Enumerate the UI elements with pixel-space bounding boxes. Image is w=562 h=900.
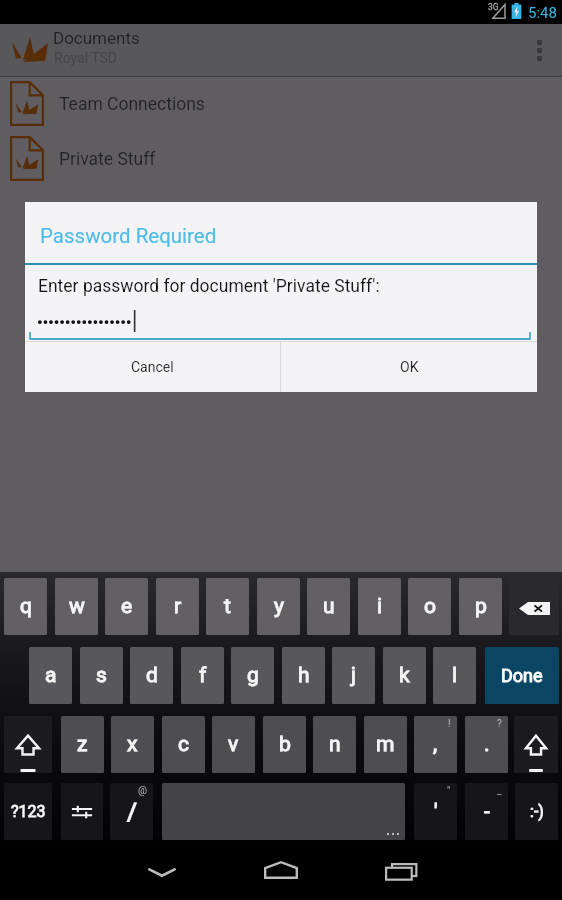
button[interactable]: u	[307, 578, 350, 635]
staticText: x	[127, 732, 138, 757]
button[interactable]: o	[408, 578, 451, 635]
staticText: Password Required	[40, 224, 217, 248]
button[interactable]: ?	[465, 716, 508, 773]
button[interactable]: Shift	[514, 716, 558, 773]
staticText: p	[475, 594, 487, 619]
staticText: j	[351, 663, 357, 688]
staticText: t	[224, 594, 231, 619]
staticText: e	[121, 594, 133, 619]
staticText: h	[298, 663, 310, 688]
button[interactable]: q	[4, 578, 47, 635]
button[interactable]: Space	[162, 783, 405, 840]
staticText: i	[377, 594, 383, 619]
staticText: .	[484, 732, 490, 757]
staticText: y	[274, 594, 284, 619]
button[interactable]: :-)	[515, 783, 558, 840]
staticText: -	[484, 799, 490, 824]
button[interactable]: Private Stuff	[0, 132, 562, 187]
staticText: g	[247, 663, 259, 688]
button[interactable]: j	[332, 647, 375, 704]
button[interactable]: Recent apps	[371, 849, 431, 893]
staticText: o	[424, 594, 436, 619]
button[interactable]: Backspace	[509, 578, 559, 635]
button[interactable]: k	[383, 647, 426, 704]
staticText: 5:48	[528, 4, 557, 22]
button[interactable]: Home	[251, 848, 311, 892]
button[interactable]: z	[61, 716, 104, 773]
button[interactable]: g	[231, 647, 274, 704]
staticText: "	[447, 785, 451, 797]
button[interactable]: x	[111, 716, 154, 773]
staticText: b	[279, 732, 291, 757]
staticText: Team Connections	[59, 94, 205, 115]
staticText: q	[20, 594, 32, 619]
staticText: Cancel	[131, 359, 174, 375]
button[interactable]: p	[459, 578, 502, 635]
button[interactable]: More options	[516, 24, 562, 77]
staticText: k	[399, 663, 410, 688]
staticText: !	[448, 718, 451, 730]
button[interactable]: v	[212, 716, 255, 773]
button[interactable]: OK	[281, 342, 537, 392]
button[interactable]: Keyboard settings	[61, 783, 103, 840]
staticText: Royal TSD	[54, 50, 117, 66]
button[interactable]: Team Connections	[0, 77, 562, 132]
staticText: m	[376, 732, 395, 757]
button[interactable]: m	[364, 716, 407, 773]
button[interactable]: Cancel	[25, 342, 280, 392]
button[interactable]: h	[282, 647, 325, 704]
button[interactable]: e	[105, 578, 148, 635]
staticText: a	[45, 663, 57, 688]
staticText: ,	[433, 732, 438, 757]
staticText: Documents	[53, 28, 140, 48]
staticText: OK	[400, 359, 419, 375]
staticText: ?	[497, 718, 502, 730]
staticText: d	[146, 663, 158, 688]
staticText: /	[127, 798, 137, 826]
button[interactable]: t	[206, 578, 249, 635]
staticText: v	[228, 732, 239, 757]
button[interactable]: n	[313, 716, 356, 773]
staticText: l	[452, 663, 458, 688]
staticText: c	[178, 732, 189, 757]
staticText: r	[174, 594, 182, 619]
staticText: ?123	[11, 802, 46, 821]
staticText: _	[497, 785, 502, 797]
button[interactable]: !	[414, 716, 457, 773]
staticText: w	[69, 594, 85, 619]
button[interactable]: Done	[485, 647, 559, 704]
button[interactable]: f	[181, 647, 224, 704]
button[interactable]: r	[156, 578, 199, 635]
staticText: n	[329, 732, 341, 757]
button[interactable]: @	[110, 783, 153, 840]
button[interactable]: Hide keyboard	[132, 850, 192, 894]
button[interactable]: w	[55, 578, 98, 635]
staticText: '	[434, 799, 438, 824]
button[interactable]: y	[257, 578, 300, 635]
staticText: 3G	[488, 2, 499, 12]
staticText: s	[96, 663, 107, 688]
staticText: z	[77, 732, 88, 757]
staticText: :-)	[530, 802, 544, 821]
button[interactable]: b	[263, 716, 306, 773]
button[interactable]: i	[358, 578, 401, 635]
button[interactable]: ?123	[4, 783, 52, 840]
button[interactable]: Shift	[4, 716, 52, 773]
staticText: Done	[501, 665, 543, 686]
staticText: u	[323, 594, 335, 619]
staticText: f	[199, 663, 207, 688]
button[interactable]: "	[414, 783, 457, 840]
button[interactable]: a	[29, 647, 72, 704]
button[interactable]: _	[465, 783, 508, 840]
button[interactable]: l	[433, 647, 476, 704]
button[interactable]: c	[162, 716, 205, 773]
button[interactable]: s	[80, 647, 123, 704]
button[interactable]: d	[130, 647, 173, 704]
staticText: @	[138, 785, 147, 797]
staticText: Private Stuff	[59, 149, 156, 170]
staticText: Enter password for document 'Private Stu…	[38, 276, 380, 297]
